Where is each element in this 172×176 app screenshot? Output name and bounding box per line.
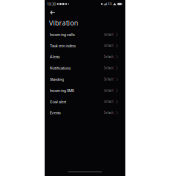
button[interactable]: Notifications [45, 63, 125, 74]
staticText: Default [103, 89, 113, 92]
button[interactable]: Incoming SMS [45, 85, 125, 96]
staticText: Incoming SMS [50, 88, 74, 93]
button[interactable]: Alerts [45, 51, 125, 63]
staticText: Default [103, 55, 113, 59]
staticText: Goal alert [50, 99, 66, 104]
staticText: Default [103, 111, 113, 115]
button[interactable]: Events [45, 107, 125, 119]
staticText: Default [103, 33, 113, 36]
button[interactable]: Task reminders [45, 40, 125, 51]
staticText: Notifications [50, 66, 71, 71]
staticText: Vibration [49, 19, 78, 27]
staticText: Default [103, 66, 113, 70]
staticText: Events [50, 111, 61, 115]
staticText: Default [103, 78, 113, 81]
staticText: 10:30 [47, 1, 56, 7]
staticText: Task reminders [50, 43, 76, 48]
staticText: 4G [108, 2, 112, 6]
staticText: Incoming calls [50, 32, 75, 37]
button[interactable]: Back [45, 8, 60, 17]
staticText: Alerts [50, 55, 60, 59]
staticText: Standing [50, 77, 64, 82]
button[interactable]: Goal alert [45, 96, 125, 107]
staticText: Default [103, 100, 113, 103]
button[interactable]: Incoming calls [45, 29, 125, 40]
button[interactable]: Standing [45, 74, 125, 85]
staticText: Default [103, 44, 113, 47]
